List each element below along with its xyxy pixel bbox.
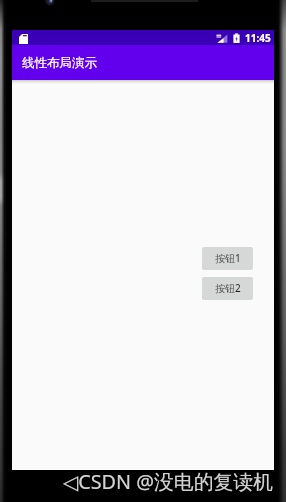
staticText: 按钮1 <box>215 251 241 265</box>
staticText: ◁CSDN @没电的复读机 <box>63 468 273 495</box>
staticText: 11:45 <box>245 31 271 45</box>
button[interactable]: 按钮2 <box>202 277 253 300</box>
button[interactable]: 按钮1 <box>202 247 253 270</box>
other: Notification <box>19 34 28 44</box>
other: Mobile signal <box>216 33 228 44</box>
staticText: 按钮2 <box>215 281 241 295</box>
staticText: 线性布局演示 <box>22 55 97 71</box>
other: Battery <box>233 33 240 43</box>
